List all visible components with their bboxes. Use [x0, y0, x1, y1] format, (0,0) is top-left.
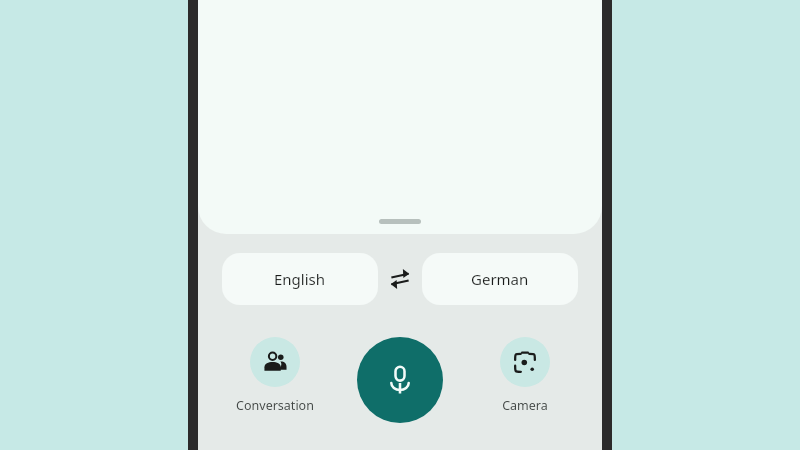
staticText: Camera	[502, 397, 548, 414]
staticText: Conversation	[236, 397, 314, 414]
button[interactable]: English	[222, 253, 378, 305]
button[interactable]: Conversation	[220, 337, 330, 414]
staticText: English	[274, 269, 326, 289]
button[interactable]: Camera	[470, 337, 580, 414]
staticText: German	[471, 269, 529, 289]
button[interactable]: German	[422, 253, 578, 305]
button[interactable]: Speak	[357, 337, 443, 423]
button[interactable]: Swap languages	[378, 253, 422, 305]
